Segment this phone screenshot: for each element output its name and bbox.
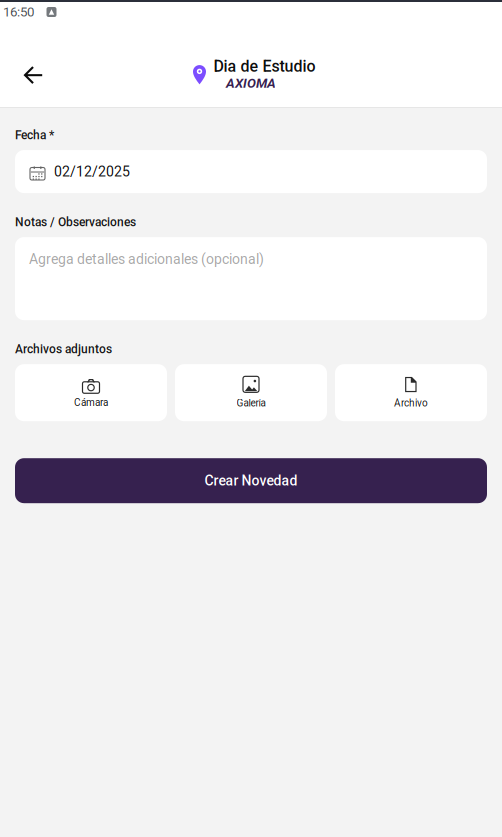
button[interactable]: Archivo xyxy=(335,364,487,421)
staticText: Notas / Observaciones xyxy=(15,215,136,229)
staticText: 16:50 xyxy=(3,4,34,20)
button[interactable]: Galería xyxy=(175,364,327,421)
staticText: Archivos adjuntos xyxy=(15,342,112,356)
button[interactable]: Crear Novedad xyxy=(15,458,487,503)
staticText: Agrega detalles adicionales (opcional) xyxy=(29,251,264,267)
staticText: Dia de Estudio xyxy=(213,57,315,76)
staticText: Archivo xyxy=(394,397,428,409)
staticText: AXIOMA xyxy=(226,75,276,91)
staticText: Galería xyxy=(236,397,265,409)
button[interactable]: Cámara xyxy=(15,364,167,421)
staticText: Fecha * xyxy=(15,128,54,142)
staticText: Cámara xyxy=(74,397,108,408)
staticText: Crear Novedad xyxy=(204,472,297,489)
button[interactable]: Back xyxy=(11,53,55,97)
staticText: 02/12/2025 xyxy=(54,163,130,180)
